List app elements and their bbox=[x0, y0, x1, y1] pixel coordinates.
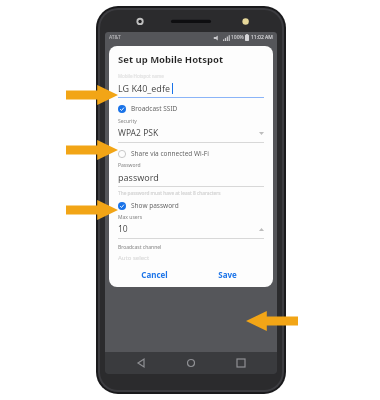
button[interactable]: password bbox=[118, 171, 264, 187]
staticText: Share via connected Wi-Fi bbox=[131, 149, 209, 158]
button[interactable]: Recent apps bbox=[228, 352, 254, 374]
button[interactable]: Show password bbox=[118, 201, 264, 210]
button[interactable]: Share via connected Wi-Fi bbox=[118, 149, 264, 158]
staticText: WPA2 PSK bbox=[118, 127, 159, 139]
staticText: 100% bbox=[231, 34, 244, 41]
button[interactable]: Back bbox=[129, 352, 155, 374]
staticText: Max users bbox=[118, 214, 143, 221]
button[interactable]: Cancel bbox=[118, 269, 191, 280]
staticText: Broadcast SSID bbox=[131, 104, 178, 113]
staticText: Mobile Hotspot name bbox=[118, 73, 164, 79]
button[interactable]: Home bbox=[178, 352, 204, 374]
staticText: password bbox=[118, 171, 159, 183]
button[interactable]: 10 bbox=[118, 223, 264, 239]
staticText: Security bbox=[118, 118, 137, 125]
button[interactable]: Broadcast SSID bbox=[118, 104, 264, 113]
staticText: Set up Mobile Hotspot bbox=[118, 53, 224, 66]
staticText: Show password bbox=[131, 201, 179, 210]
staticText: 10 bbox=[118, 223, 128, 235]
staticText: 11:02 AM bbox=[251, 34, 273, 41]
button[interactable]: Save bbox=[191, 269, 264, 280]
staticText: The password must have at least 8 charac… bbox=[118, 190, 221, 197]
staticText: Save bbox=[218, 269, 237, 280]
staticText: Broadcast channel bbox=[118, 244, 162, 251]
staticText: Cancel bbox=[141, 269, 168, 280]
staticText: AT&T bbox=[109, 34, 121, 41]
staticText: Password bbox=[118, 162, 141, 169]
button[interactable]: WPA2 PSK bbox=[118, 127, 264, 143]
button[interactable]: LG K40_edfe bbox=[118, 82, 264, 98]
staticText: Auto select bbox=[118, 254, 150, 262]
staticText: LG K40_edfe bbox=[118, 82, 171, 94]
